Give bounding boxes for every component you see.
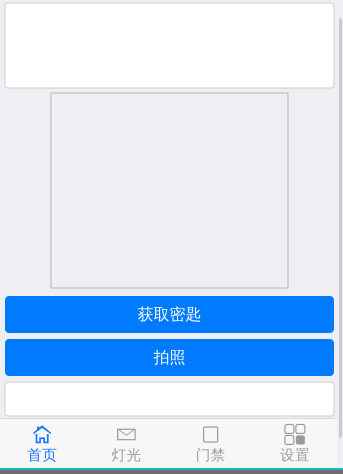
button[interactable]: 获取密匙 [5, 296, 334, 333]
button[interactable]: 灯光 [84, 419, 168, 468]
staticText: 门禁 [196, 446, 226, 464]
staticText: 拍照 [153, 348, 185, 367]
button[interactable]: 首页 [0, 419, 84, 468]
staticText: 设置 [280, 446, 310, 464]
staticText: 首页 [27, 446, 57, 464]
button[interactable]: 拍照 [5, 339, 334, 376]
button[interactable]: 设置 [253, 419, 337, 468]
staticText: 灯光 [111, 446, 141, 464]
staticText: 获取密匙 [137, 305, 201, 324]
button[interactable]: 门禁 [168, 419, 253, 468]
